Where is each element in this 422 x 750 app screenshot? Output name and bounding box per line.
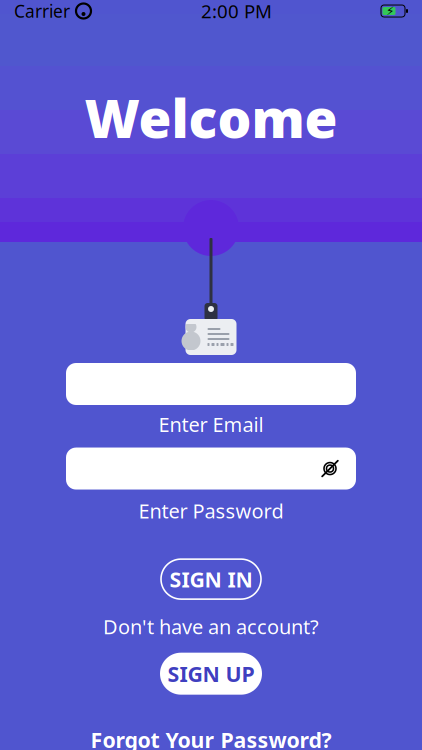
staticText: 2:00 PM (201, 0, 272, 23)
staticText: SIGN UP (167, 659, 254, 688)
staticText: Forgot Your Password? (90, 726, 331, 750)
button[interactable]: Password field (66, 448, 356, 490)
staticText: Enter Email (158, 411, 263, 438)
staticText: Enter Password (138, 498, 283, 524)
staticText: ⚡︎ (386, 4, 394, 18)
staticText: SIGN IN (169, 565, 252, 593)
staticText: Welcome (84, 82, 337, 153)
button[interactable]: SIGN IN (161, 559, 261, 599)
button[interactable]: Email field (66, 363, 356, 405)
button[interactable]: SIGN UP (160, 653, 262, 695)
staticText: Carrier (14, 0, 70, 22)
staticText: Don't have an account? (103, 613, 319, 640)
button[interactable]: Forgot Your Password? (90, 726, 331, 750)
